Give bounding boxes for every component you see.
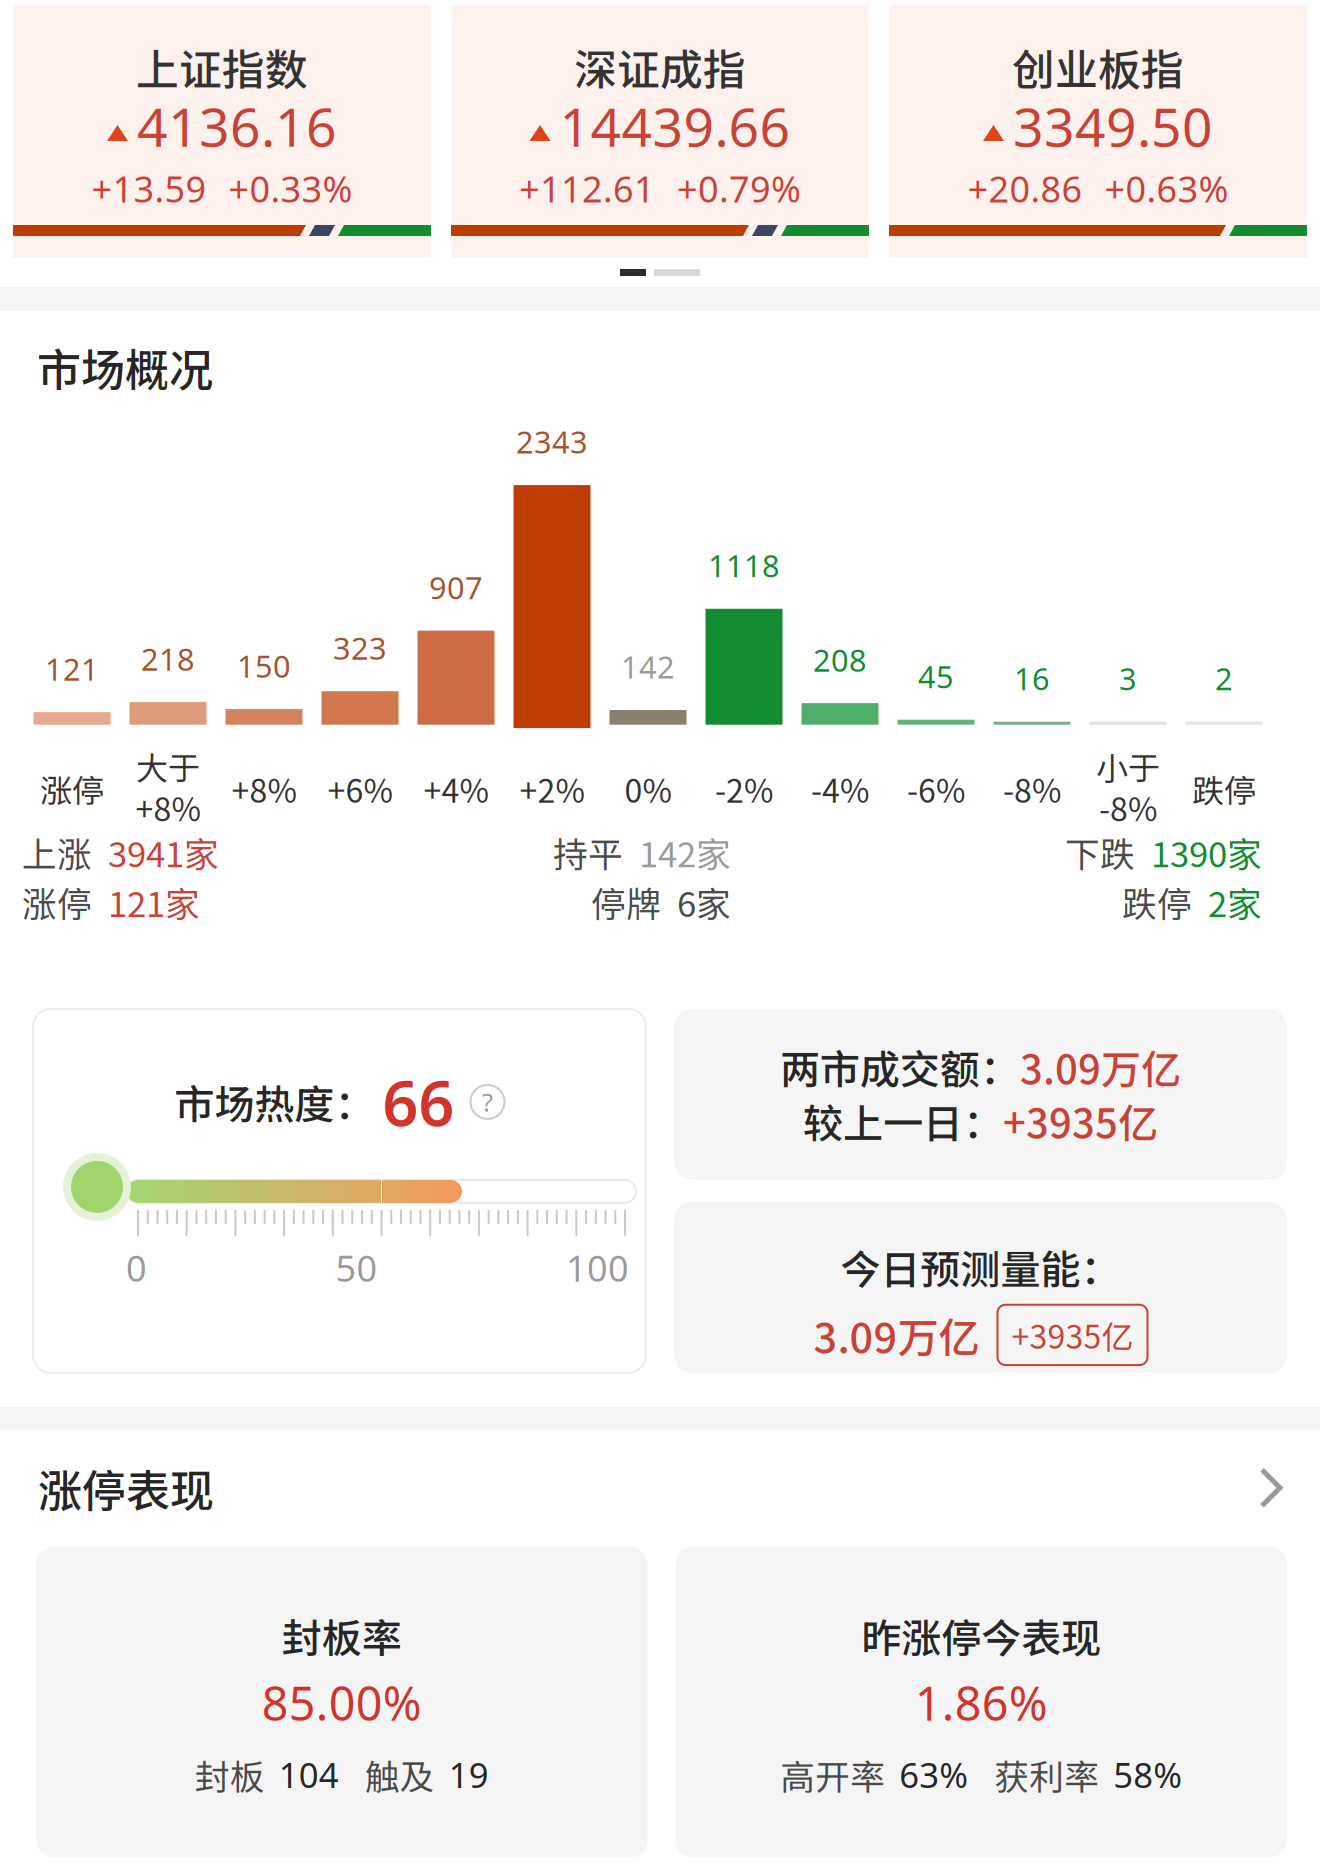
staticText: 2家 bbox=[1208, 877, 1262, 927]
staticText: -8% bbox=[1099, 784, 1157, 830]
staticText: 2 bbox=[1215, 658, 1233, 699]
staticText: -6% bbox=[907, 766, 965, 812]
staticText: -8% bbox=[1003, 766, 1061, 812]
staticText: 58% bbox=[1113, 1752, 1182, 1798]
staticText: 获利率 bbox=[994, 1749, 1099, 1800]
staticText: 上涨 bbox=[22, 827, 92, 877]
staticText: 66 bbox=[382, 1060, 454, 1143]
staticText: 封板率 bbox=[282, 1607, 402, 1665]
staticText: 121 bbox=[45, 648, 99, 689]
staticText: +0.33% bbox=[228, 165, 352, 212]
staticText: 停牌 bbox=[591, 877, 661, 927]
staticText: 市场热度： bbox=[174, 1073, 374, 1131]
staticText: 85.00% bbox=[262, 1672, 422, 1734]
staticText: 14439.66 bbox=[559, 91, 790, 161]
staticText: 大于 bbox=[136, 743, 200, 789]
staticText: 1390家 bbox=[1151, 827, 1262, 877]
staticText: +0.63% bbox=[1104, 165, 1228, 212]
staticText: 16 bbox=[1014, 658, 1050, 699]
staticText: -2% bbox=[715, 766, 773, 812]
staticText: 市场概况 bbox=[37, 335, 213, 399]
staticText: -4% bbox=[811, 766, 869, 812]
staticText: ? bbox=[482, 1085, 493, 1119]
staticText: 2343 bbox=[516, 421, 588, 462]
staticText: 907 bbox=[429, 567, 483, 608]
staticText: 3.09万亿 bbox=[813, 1305, 979, 1365]
staticText: 6家 bbox=[677, 877, 731, 927]
staticText: 150 bbox=[237, 645, 291, 686]
staticText: 4136.16 bbox=[137, 91, 337, 161]
staticText: 3349.50 bbox=[1013, 91, 1213, 161]
staticText: 触及 bbox=[365, 1749, 435, 1800]
staticText: 涨停 bbox=[40, 766, 104, 812]
staticText: 1.86% bbox=[915, 1672, 1048, 1734]
staticText: 小于 bbox=[1096, 743, 1160, 789]
staticText: +20.86 bbox=[967, 165, 1082, 212]
staticText: 121家 bbox=[108, 877, 200, 927]
staticText: 19 bbox=[449, 1752, 489, 1798]
staticText: 两市成交额： bbox=[780, 1038, 1020, 1096]
staticText: 208 bbox=[813, 639, 867, 680]
button[interactable]: 涨停表现 bbox=[0, 1430, 1320, 1547]
staticText: 142 bbox=[621, 646, 675, 687]
staticText: 跌停 bbox=[1192, 766, 1256, 812]
staticText: 跌停 bbox=[1122, 877, 1192, 927]
staticText: +6% bbox=[327, 766, 392, 812]
staticText: +112.61 bbox=[519, 165, 655, 212]
staticText: +3935亿 bbox=[1011, 1312, 1133, 1358]
staticText: 昨涨停今表现 bbox=[861, 1607, 1101, 1665]
staticText: +0.79% bbox=[677, 165, 801, 212]
button[interactable]: 上证指数 bbox=[13, 5, 431, 258]
staticText: 涨停表现 bbox=[38, 1456, 214, 1520]
staticText: 上证指数 bbox=[136, 36, 308, 98]
staticText: +13.59 bbox=[91, 165, 206, 212]
button[interactable]: 创业板指 bbox=[889, 5, 1307, 258]
staticText: 218 bbox=[141, 638, 195, 679]
staticText: 下跌 bbox=[1065, 827, 1135, 877]
staticText: 3.09万亿 bbox=[1020, 1038, 1181, 1096]
staticText: 较上一日： bbox=[803, 1092, 1003, 1150]
staticText: 涨停 bbox=[22, 877, 92, 927]
staticText: 50 bbox=[335, 1244, 377, 1292]
staticText: 3 bbox=[1119, 658, 1137, 699]
staticText: +2% bbox=[519, 766, 584, 812]
staticText: 今日预测量能： bbox=[840, 1238, 1120, 1296]
staticText: 100 bbox=[566, 1244, 629, 1292]
staticText: 高开率 bbox=[780, 1749, 885, 1800]
button[interactable]: 深证成指 bbox=[451, 5, 869, 258]
staticText: 创业板指 bbox=[1012, 36, 1184, 98]
staticText: 45 bbox=[918, 656, 954, 697]
staticText: 封板 bbox=[195, 1749, 265, 1800]
staticText: 323 bbox=[333, 627, 387, 668]
staticText: 0% bbox=[624, 766, 671, 812]
staticText: 142家 bbox=[639, 827, 731, 877]
staticText: +8% bbox=[231, 766, 296, 812]
staticText: 1118 bbox=[708, 545, 780, 586]
staticText: +4% bbox=[423, 766, 488, 812]
staticText: 持平 bbox=[553, 827, 623, 877]
staticText: 104 bbox=[279, 1752, 339, 1798]
staticText: +8% bbox=[135, 784, 200, 830]
staticText: 0 bbox=[126, 1244, 147, 1292]
staticText: +3935亿 bbox=[1003, 1092, 1158, 1150]
staticText: 3941家 bbox=[108, 827, 219, 877]
staticText: 63% bbox=[899, 1752, 968, 1798]
staticText: 深证成指 bbox=[574, 36, 746, 98]
